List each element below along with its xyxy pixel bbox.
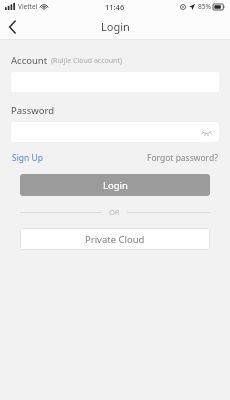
button[interactable]: Show password <box>11 122 219 142</box>
button[interactable]: Back <box>0 15 24 39</box>
button[interactable]: Login <box>20 174 210 196</box>
staticText: 11:46 <box>105 2 125 12</box>
staticText: Account <box>11 54 48 67</box>
button[interactable]: Forgot password? <box>146 150 219 166</box>
staticText: Login <box>101 19 130 34</box>
staticText: OR <box>109 207 120 217</box>
staticText: Private Cloud <box>85 233 145 246</box>
staticText: 85% <box>198 2 211 11</box>
staticText: Password <box>11 104 54 117</box>
button[interactable]: Show password <box>199 125 213 139</box>
button[interactable]: Sign Up <box>11 150 44 166</box>
staticText: Login <box>103 179 128 192</box>
staticText: Viettel <box>18 2 38 11</box>
staticText: Sign Up <box>12 152 43 164</box>
staticText: (Ruijie Cloud account) <box>51 56 123 66</box>
button[interactable]: Private Cloud <box>20 228 210 250</box>
staticText: Forgot password? <box>147 152 218 164</box>
